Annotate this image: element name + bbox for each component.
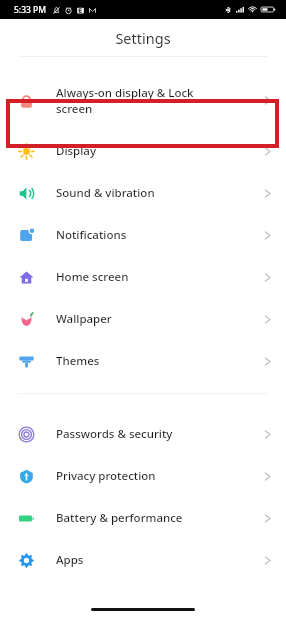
staticText: Notifications [56,227,260,243]
staticText: Wallpaper [56,311,260,327]
staticText: Home screen [56,269,260,285]
button[interactable]: Themes [0,340,286,382]
staticText: Settings [115,28,171,48]
button[interactable]: Home screen [0,256,286,298]
other: Highlight [6,99,279,148]
button[interactable]: Notifications [0,214,286,256]
button[interactable]: Wallpaper [0,298,286,340]
staticText: Battery & performance [56,510,260,526]
staticText: Privacy protection [56,468,260,484]
button[interactable]: Always-on display & Lock screen [0,76,286,124]
button[interactable]: Apps [0,539,286,581]
staticText: Apps [56,552,260,568]
staticText: Sound & vibration [56,185,260,201]
staticText: Passwords & security [56,426,260,442]
button[interactable]: Display [0,130,286,172]
staticText: Themes [56,353,260,369]
button[interactable]: Sound & vibration [0,172,286,214]
button[interactable]: Privacy protection [0,455,286,497]
staticText: 5:33 PM [14,4,47,16]
staticText: Display [56,143,260,159]
staticText: Always-on display & Lock screen [56,85,260,116]
button[interactable]: Battery & performance [0,497,286,539]
button[interactable]: Passwords & security [0,413,286,455]
